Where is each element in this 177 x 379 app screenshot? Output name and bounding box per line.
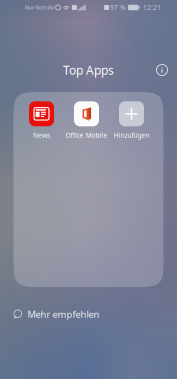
button[interactable]: Mehr empfehlen	[13, 305, 99, 323]
staticText: News	[33, 131, 50, 140]
button[interactable]: News	[19, 102, 64, 139]
button[interactable]: Office Mobile	[64, 102, 109, 139]
button[interactable]: Hinzufügen	[109, 102, 154, 139]
staticText: Mehr empfehlen	[27, 308, 99, 320]
staticText: 12:21	[143, 3, 161, 12]
staticText: Nur Notrufe	[25, 4, 54, 11]
staticText: Office Mobile	[65, 131, 107, 140]
button[interactable]: Info	[151, 60, 173, 80]
staticText: 97 %	[110, 3, 126, 12]
staticText: Top Apps	[63, 62, 114, 78]
staticText: Hinzufügen	[113, 131, 149, 140]
